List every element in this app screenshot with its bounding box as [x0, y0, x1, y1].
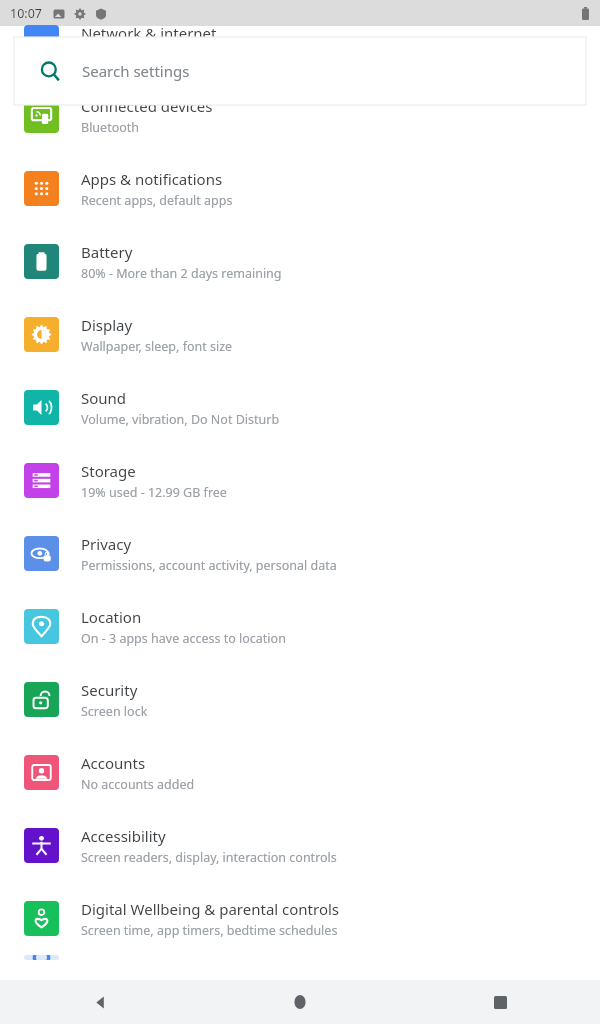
staticText: Apps & notifications [81, 169, 223, 189]
staticText: 19% used - 12.99 GB free [81, 484, 227, 501]
staticText: Screen readers, display, interaction con… [81, 849, 337, 866]
staticText: Permissions, account activity, personal … [81, 557, 337, 574]
staticText: Storage [81, 461, 136, 481]
staticText: Wallpaper, sleep, font size [81, 338, 233, 355]
button[interactable]: Location [0, 590, 600, 663]
button[interactable]: Sound [0, 371, 600, 444]
button[interactable]: Digital Wellbeing & parental controls [0, 882, 600, 955]
staticText: Search settings [82, 61, 190, 81]
button[interactable]: Apps & notifications [0, 152, 600, 225]
staticText: Battery [81, 242, 133, 262]
staticText: On - 3 apps have access to location [81, 630, 286, 647]
staticText: 10:07 [10, 5, 42, 22]
staticText: Bluetooth [81, 119, 140, 136]
button[interactable]: Network & internet [0, 6, 600, 79]
button[interactable]: Search settings [14, 37, 586, 105]
staticText: Connected devices [81, 96, 213, 116]
staticText: Network & internet [81, 23, 217, 43]
button[interactable]: Accessibility [0, 809, 600, 882]
staticText: Accounts [81, 753, 146, 773]
staticText: Accessibility [81, 826, 166, 846]
button[interactable]: Display [0, 298, 600, 371]
button[interactable]: Home [200, 980, 400, 1024]
button[interactable]: Battery [0, 225, 600, 298]
staticText: 80% - More than 2 days remaining [81, 265, 282, 282]
staticText: Security [81, 680, 138, 700]
button[interactable]: Privacy [0, 517, 600, 590]
button[interactable]: Connected devices [0, 79, 600, 152]
staticText: Screen lock [81, 703, 148, 720]
staticText: No accounts added [81, 776, 195, 793]
button[interactable]: Security [0, 663, 600, 736]
staticText: Screen time, app timers, bedtime schedul… [81, 922, 338, 939]
staticText: Sound [81, 388, 127, 408]
staticText: Recent apps, default apps [81, 192, 233, 209]
staticText: Display [81, 315, 133, 335]
staticText: Location [81, 607, 142, 627]
staticText: Volume, vibration, Do Not Disturb [81, 411, 280, 428]
staticText: Digital Wellbeing & parental controls [81, 899, 340, 919]
button[interactable]: Recent apps [400, 980, 600, 1024]
button[interactable]: Google [0, 955, 600, 960]
staticText: Privacy [81, 534, 132, 554]
button[interactable]: Storage [0, 444, 600, 517]
button[interactable]: Back [0, 980, 200, 1024]
button[interactable]: Accounts [0, 736, 600, 809]
